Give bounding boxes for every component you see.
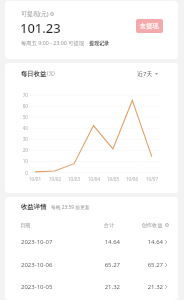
staticText: 10/05 [103, 176, 123, 182]
staticText: 收益详情 [21, 203, 47, 211]
staticText: 去提现 [140, 22, 159, 30]
staticText: 可提现(元) [21, 10, 49, 18]
staticText: 10/07 [142, 176, 162, 182]
staticText: 每日收益 [21, 70, 47, 78]
staticText: 14.64 [80, 238, 120, 246]
button[interactable]: 提现记录 [89, 40, 109, 46]
button[interactable]: 去提现 [136, 19, 163, 33]
staticText: 65.27 [80, 261, 120, 269]
staticText: 65.27 [123, 261, 163, 269]
staticText: 0 [8, 170, 28, 176]
staticText: 101.23 [20, 19, 61, 37]
staticText: 20 [8, 147, 28, 153]
staticText: 2023-10-06 [21, 261, 53, 269]
staticText: 70 [8, 92, 28, 98]
staticText: 60 [8, 103, 28, 109]
staticText: 每晚 23:59 前更新 [51, 204, 90, 211]
staticText: 2023-10-05 [21, 283, 53, 291]
staticText: 10 [8, 158, 28, 164]
staticText: 10/04 [84, 176, 104, 182]
staticText: 10/02 [45, 176, 65, 182]
staticText: 14.64 [123, 238, 163, 246]
staticText: 40 [8, 125, 28, 131]
staticText: (元) [47, 70, 55, 77]
staticText: 10/06 [122, 176, 142, 182]
staticText: 30 [8, 136, 28, 142]
staticText: 日期 [20, 222, 60, 229]
button[interactable]: 2023-10-06 [5, 254, 178, 276]
staticText: 2023-10-07 [21, 238, 53, 246]
staticText: 近7天 [137, 70, 153, 78]
staticText: 21.32 [80, 283, 120, 291]
staticText: 50 [8, 114, 28, 120]
staticText: 21.32 [123, 283, 163, 291]
button[interactable]: 2023-10-05 [5, 276, 178, 298]
staticText: 10/03 [64, 176, 84, 182]
staticText: 10/01 [25, 176, 45, 182]
staticText: 创作收益 [132, 222, 172, 229]
staticText: 合计 [89, 222, 129, 229]
button[interactable]: 2023-10-07 [5, 231, 178, 253]
button[interactable]: 近7天 [137, 70, 158, 78]
staticText: 每周五 9:00 - 23:00 可提现 [21, 39, 85, 46]
